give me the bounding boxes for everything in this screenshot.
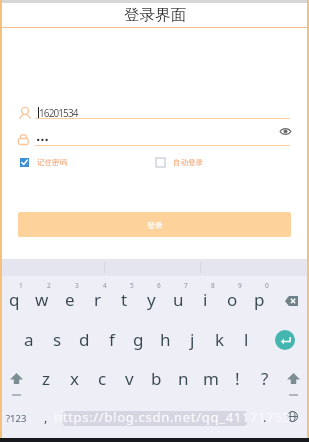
button[interactable]: Space xyxy=(63,411,247,426)
staticText: z xyxy=(42,367,50,390)
button[interactable]: 8 xyxy=(192,276,219,315)
staticText: m xyxy=(203,367,219,390)
staticText: 16201534 xyxy=(39,106,78,120)
staticText: ! xyxy=(235,367,240,390)
staticText: q xyxy=(9,288,20,311)
staticText: . xyxy=(263,408,267,426)
button[interactable]: z xyxy=(32,354,60,393)
staticText: s xyxy=(53,328,62,351)
staticText: 4 xyxy=(103,281,107,290)
button[interactable]: x xyxy=(60,354,88,393)
button[interactable]: 登录 xyxy=(18,212,291,237)
staticText: 9 xyxy=(238,281,242,290)
staticText: 7 xyxy=(184,281,188,290)
staticText: f xyxy=(109,328,115,351)
staticText: w xyxy=(35,288,49,311)
button[interactable]: ? xyxy=(251,354,278,393)
staticText: l xyxy=(244,328,249,351)
button[interactable]: 9 xyxy=(219,276,246,315)
button[interactable]: a xyxy=(15,315,43,354)
staticText: 1 xyxy=(19,281,23,290)
button[interactable]: l xyxy=(233,315,260,354)
button[interactable]: d xyxy=(71,315,98,354)
button[interactable]: 6 xyxy=(138,276,165,315)
staticText: 记住密码 xyxy=(37,158,67,167)
button[interactable]: 5 xyxy=(111,276,138,315)
button[interactable]: , xyxy=(32,393,60,442)
button[interactable]: b xyxy=(143,354,170,393)
staticText: i xyxy=(203,288,208,311)
staticText: 登录界面 xyxy=(124,5,186,25)
button[interactable]: m xyxy=(197,354,224,393)
staticText: x xyxy=(70,367,79,390)
button[interactable]: n xyxy=(170,354,197,393)
staticText: ?123 xyxy=(6,412,27,425)
staticText: 0 xyxy=(265,281,269,290)
staticText: n xyxy=(178,367,189,390)
button[interactable]: 0 xyxy=(246,276,273,315)
staticText: v xyxy=(125,367,134,390)
button[interactable]: . xyxy=(251,393,278,442)
button[interactable]: 3 xyxy=(56,276,84,315)
button[interactable]: Change language xyxy=(278,393,309,442)
button[interactable]: h xyxy=(152,315,179,354)
button[interactable]: j xyxy=(179,315,206,354)
button[interactable]: 4 xyxy=(84,276,111,315)
button[interactable]: g xyxy=(125,315,152,354)
button[interactable]: 1 xyxy=(0,276,28,315)
staticText: 登录 xyxy=(147,220,163,230)
staticText: j xyxy=(190,328,195,351)
staticText: y xyxy=(147,288,156,311)
staticText: d xyxy=(79,328,90,351)
button[interactable]: f xyxy=(98,315,125,354)
button[interactable]: 7 xyxy=(165,276,192,315)
staticText: k xyxy=(215,328,225,351)
button[interactable]: ?123 xyxy=(0,393,32,442)
staticText: 8 xyxy=(211,281,215,290)
button[interactable]: ! xyxy=(224,354,251,393)
button[interactable]: 2 xyxy=(28,276,56,315)
staticText: 2 xyxy=(47,281,51,290)
button[interactable]: c xyxy=(88,354,116,393)
staticText: 6 xyxy=(157,281,161,290)
staticText: https://blog.csdn.net/qq_41171753 xyxy=(54,408,291,426)
staticText: c xyxy=(98,367,107,390)
staticText: 自动登录 xyxy=(173,158,203,167)
button[interactable]: 自动登录 xyxy=(156,158,203,167)
staticText: r xyxy=(94,288,102,311)
button[interactable]: Shift xyxy=(0,354,32,393)
staticText: e xyxy=(65,288,75,311)
staticText: 5 xyxy=(130,281,134,290)
staticText: h xyxy=(160,328,171,351)
button[interactable]: Show password xyxy=(279,125,292,138)
staticText: g xyxy=(133,328,144,351)
staticText: ? xyxy=(261,367,269,390)
staticText: t xyxy=(121,288,128,311)
staticText: p xyxy=(254,288,265,311)
staticText: 3 xyxy=(75,281,79,290)
button[interactable]: Backspace xyxy=(273,276,309,315)
button[interactable]: 记住密码 xyxy=(20,158,67,167)
staticText: u xyxy=(173,288,184,311)
staticText: o xyxy=(227,288,238,311)
staticText: b xyxy=(151,367,162,390)
button[interactable]: v xyxy=(116,354,143,393)
staticText: , xyxy=(44,408,48,426)
button[interactable]: k xyxy=(206,315,233,354)
button[interactable]: Shift xyxy=(278,354,309,393)
staticText: a xyxy=(24,328,34,351)
button[interactable]: s xyxy=(43,315,71,354)
button[interactable]: Enter xyxy=(260,315,309,354)
